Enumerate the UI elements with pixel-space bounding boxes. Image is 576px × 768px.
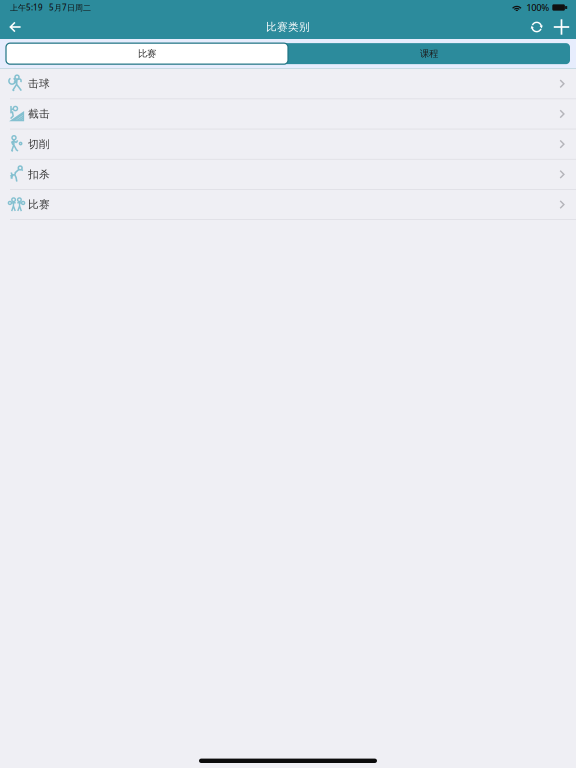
button[interactable]: 击球 [0,69,576,99]
staticText: 比赛类别 [266,20,310,33]
staticText: 切削 [28,138,50,151]
button[interactable]: 刷新 [522,15,547,39]
button[interactable]: 扣杀 [0,160,576,190]
button[interactable]: 比赛 [6,43,288,64]
staticText: 比赛 [28,198,50,211]
staticText: 比赛 [138,48,156,59]
staticText: 截击 [28,107,50,120]
button[interactable]: 添加 [547,15,576,39]
staticText: 击球 [28,77,50,90]
button[interactable]: 切削 [0,129,576,160]
button[interactable]: 截击 [0,99,576,129]
staticText: 课程 [420,48,438,59]
button[interactable]: 课程 [288,43,570,64]
button[interactable]: 比赛 [0,190,576,220]
button[interactable]: 返回 [0,15,30,39]
staticText: 上午5:19 5月7日周二 [10,2,91,13]
staticText: 扣杀 [28,168,50,181]
staticText: 100% [526,1,549,14]
